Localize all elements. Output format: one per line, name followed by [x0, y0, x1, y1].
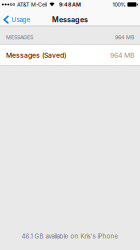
button[interactable]: Messages (Saved) [0, 45, 140, 65]
staticText: 964 MB [115, 34, 134, 41]
staticText: 46.1 GB available on Kris's iPhone [21, 233, 118, 240]
staticText: AT&T M-Cell [17, 1, 47, 8]
staticText: 100% [113, 1, 126, 8]
staticText: Messages (Saved) [6, 51, 66, 59]
staticText: 964 MB [110, 51, 134, 59]
staticText: Usage [12, 16, 31, 23]
staticText: MESSAGES [6, 34, 33, 41]
staticText: Messages [52, 15, 88, 24]
staticText: 9:48 AM [59, 1, 81, 8]
button[interactable]: Usage [0, 9, 35, 26]
